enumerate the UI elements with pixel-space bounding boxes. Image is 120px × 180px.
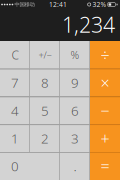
staticText: 7 xyxy=(11,74,19,91)
staticText: . xyxy=(73,157,76,175)
button[interactable]: 4 xyxy=(0,97,30,124)
staticText: 5 xyxy=(41,102,49,119)
staticText: 12:41 xyxy=(49,0,67,9)
button[interactable]: 2 xyxy=(30,124,60,152)
button[interactable]: 3 xyxy=(60,124,90,152)
staticText: 1,234 xyxy=(62,10,115,39)
staticText: 2 xyxy=(41,129,49,147)
staticText: ÷ xyxy=(100,44,109,65)
staticText: = xyxy=(100,155,109,177)
button[interactable]: 6 xyxy=(60,97,90,124)
button[interactable]: = xyxy=(90,152,120,180)
button[interactable]: 8 xyxy=(30,69,60,97)
button[interactable]: % xyxy=(60,41,90,69)
button[interactable]: . xyxy=(60,152,90,180)
staticText: 3 xyxy=(71,129,79,147)
staticText: 0 xyxy=(11,157,19,175)
staticText: % xyxy=(70,48,79,62)
button[interactable]: 0 xyxy=(0,152,60,180)
staticText: 9 xyxy=(71,74,79,91)
button[interactable]: C xyxy=(0,41,30,69)
button[interactable]: 7 xyxy=(0,69,30,97)
staticText: 6 xyxy=(71,102,79,119)
staticText: 中国移动 xyxy=(14,1,34,8)
staticText: +/− xyxy=(38,49,51,61)
staticText: 32% xyxy=(93,0,107,9)
button[interactable]: + xyxy=(90,124,120,152)
button[interactable]: − xyxy=(90,97,120,124)
button[interactable]: × xyxy=(90,69,120,97)
staticText: − xyxy=(100,100,109,121)
button[interactable]: ÷ xyxy=(90,41,120,69)
staticText: + xyxy=(100,128,109,149)
button[interactable]: 9 xyxy=(60,69,90,97)
button[interactable]: +/− xyxy=(30,41,60,69)
button[interactable]: 5 xyxy=(30,97,60,124)
staticText: × xyxy=(100,72,109,93)
staticText: C xyxy=(11,47,18,63)
staticText: 4 xyxy=(11,102,19,119)
staticText: 1 xyxy=(11,129,19,147)
staticText: 8 xyxy=(41,74,49,91)
button[interactable]: 1 xyxy=(0,124,30,152)
